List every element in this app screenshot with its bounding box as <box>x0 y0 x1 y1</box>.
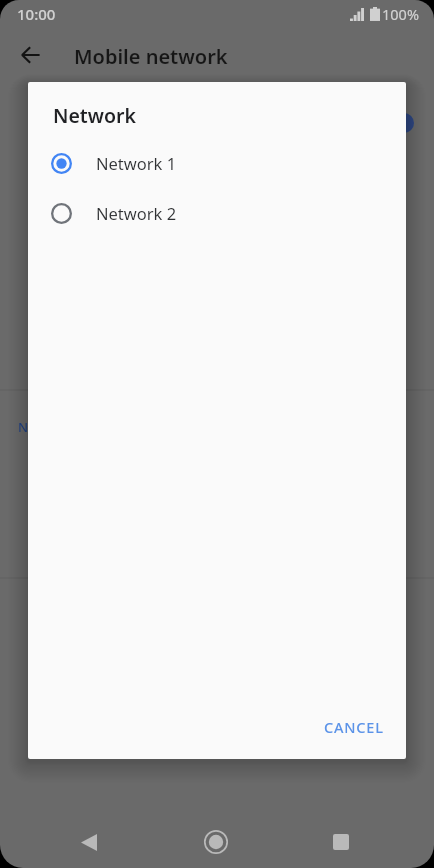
staticText: CANCEL <box>324 717 384 737</box>
button[interactable]: Back <box>65 818 113 866</box>
button[interactable]: Recent apps <box>317 818 365 866</box>
staticText: 10:00 <box>17 4 56 24</box>
button[interactable]: Network 2 <box>28 188 406 238</box>
button[interactable]: Network 1 <box>28 138 406 188</box>
staticText: Network <box>18 418 72 436</box>
staticText: Network 2 <box>96 202 177 224</box>
staticText: Network 1 <box>96 152 177 174</box>
button[interactable]: CANCEL <box>315 708 393 746</box>
staticText: Mobile network <box>74 43 228 70</box>
button[interactable]: Home <box>192 818 240 866</box>
staticText: Network <box>53 102 136 129</box>
staticText: 100% <box>382 4 419 24</box>
button[interactable]: Navigate up <box>2 27 58 83</box>
